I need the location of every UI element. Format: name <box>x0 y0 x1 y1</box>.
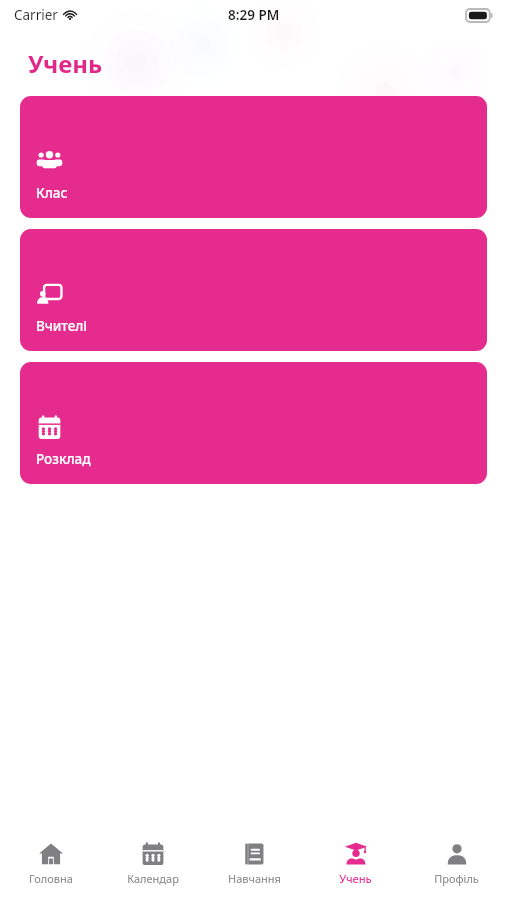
button[interactable]: Вчителі <box>20 229 487 351</box>
staticText: Учень <box>339 871 372 886</box>
button[interactable]: Календар <box>102 832 204 900</box>
staticText: Розклад <box>36 450 91 468</box>
staticText: Вчителі <box>36 317 88 335</box>
staticText: Carrier <box>14 6 58 24</box>
button[interactable]: Навчання <box>204 832 305 900</box>
button[interactable]: Розклад <box>20 362 487 484</box>
staticText: Навчання <box>228 871 281 886</box>
button[interactable]: Головна <box>0 832 102 900</box>
staticText: Головна <box>29 871 73 886</box>
button[interactable]: Профіль <box>406 832 507 900</box>
staticText: Учень <box>28 47 103 80</box>
staticText: 8:29 PM <box>228 6 280 24</box>
staticText: Клас <box>36 184 68 202</box>
button[interactable]: Учень <box>305 832 406 900</box>
staticText: Календар <box>127 871 179 886</box>
staticText: Профіль <box>434 871 479 886</box>
button[interactable]: Клас <box>20 96 487 218</box>
